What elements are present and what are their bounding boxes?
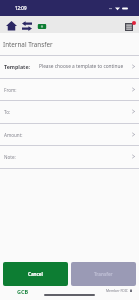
staticText: Cancel	[28, 271, 43, 277]
staticText: To:	[4, 109, 11, 115]
button[interactable]: Template:	[0, 55, 139, 78]
staticText: Template:	[4, 63, 31, 70]
staticText: Internal Transfer	[3, 40, 53, 49]
staticText: Note:	[4, 154, 16, 160]
button[interactable]: Transfer	[19, 18, 34, 33]
staticText: Amount:	[4, 132, 23, 138]
staticText: 12:09	[15, 5, 27, 11]
button[interactable]: Payments	[34, 18, 49, 33]
button[interactable]: Transfer	[71, 262, 136, 286]
staticText: From:	[4, 87, 17, 93]
button[interactable]: Note:	[0, 145, 139, 168]
button[interactable]: Amount:	[0, 123, 139, 146]
staticText: Please choose a template to continue	[39, 63, 124, 70]
button[interactable]: From:	[0, 78, 139, 101]
button[interactable]: Home	[4, 18, 19, 33]
button[interactable]: Cancel	[3, 262, 68, 286]
staticText: Transfer	[94, 271, 113, 277]
staticText: GCB	[17, 288, 29, 295]
button[interactable]: Messages	[123, 19, 137, 33]
staticText: Member FDIC	[106, 288, 128, 293]
button[interactable]: To:	[0, 100, 139, 123]
